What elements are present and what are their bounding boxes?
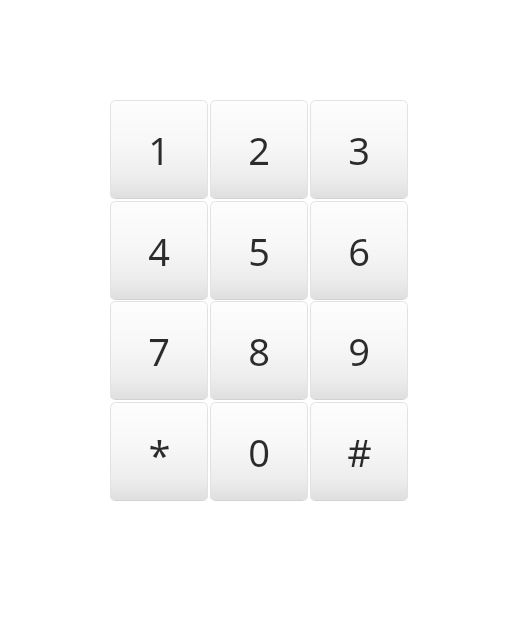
staticText: # (347, 426, 372, 478)
button[interactable]: 4 (110, 201, 208, 300)
staticText: 7 (148, 325, 170, 377)
staticText: 5 (248, 225, 270, 277)
button[interactable]: 9 (310, 301, 408, 400)
staticText: * (148, 427, 171, 481)
staticText: 4 (148, 225, 170, 277)
staticText: 3 (348, 124, 370, 176)
button[interactable]: 8 (210, 301, 308, 400)
staticText: 6 (348, 225, 370, 277)
button[interactable]: 7 (110, 301, 208, 400)
button[interactable]: 6 (310, 201, 408, 300)
staticText: 9 (348, 325, 370, 377)
button[interactable]: 0 (210, 402, 308, 501)
button[interactable]: 3 (310, 100, 408, 199)
button[interactable]: 1 (110, 100, 208, 199)
button[interactable]: 5 (210, 201, 308, 300)
staticText: 1 (148, 124, 170, 176)
staticText: 2 (248, 124, 270, 176)
staticText: 8 (248, 325, 270, 377)
staticText: 0 (248, 426, 270, 478)
button[interactable]: * (110, 402, 208, 501)
button[interactable]: 2 (210, 100, 308, 199)
button[interactable]: # (310, 402, 408, 501)
